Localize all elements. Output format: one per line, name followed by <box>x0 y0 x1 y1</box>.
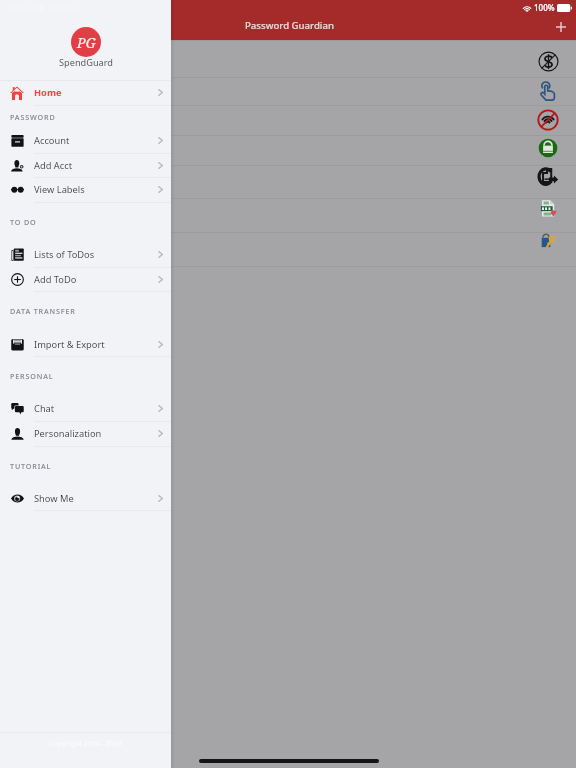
staticText: Personalization <box>34 427 102 440</box>
button[interactable]: Import & Export <box>0 332 171 357</box>
button[interactable]: Add password <box>549 15 572 38</box>
button[interactable]: No charge <box>0 40 576 76</box>
button[interactable]: Show Me <box>0 486 171 511</box>
button[interactable]: Home <box>0 80 171 105</box>
button[interactable]: Tap to view <box>0 77 576 106</box>
button[interactable]: View Labels <box>0 177 171 202</box>
staticText: Add ToDo <box>34 273 77 286</box>
staticText: Lists of ToDos <box>34 248 95 261</box>
button[interactable]: Lists of ToDos <box>0 242 171 267</box>
staticText: PG <box>77 33 96 52</box>
staticText: TO DO <box>10 217 37 227</box>
staticText: DATA TRANSFER <box>10 306 76 316</box>
staticText: TUTORIAL <box>10 461 52 471</box>
button[interactable]: Account <box>0 128 171 153</box>
button[interactable]: Add ToDo <box>0 267 171 292</box>
staticText: PASSWORD <box>10 112 56 122</box>
staticText: Chat <box>34 402 55 415</box>
staticText: PERSONAL <box>10 371 54 381</box>
staticText: Password Guardian <box>245 19 334 32</box>
staticText: View Labels <box>34 183 85 196</box>
staticText: Account <box>34 134 70 147</box>
button[interactable]: Add Acct <box>0 153 171 178</box>
staticText: Add Acct <box>34 159 73 172</box>
button[interactable]: Password key <box>0 232 576 266</box>
button[interactable]: Export CSV <box>0 165 576 199</box>
staticText: Show Me <box>34 492 74 505</box>
button[interactable]: Personalization <box>0 421 171 446</box>
button[interactable]: SpendGuard logo <box>71 27 101 57</box>
staticText: Import & Export <box>34 338 105 351</box>
staticText: 100% <box>534 2 555 13</box>
staticText: Home <box>34 86 62 99</box>
button[interactable]: Secure vault <box>0 135 576 165</box>
button[interactable]: Chat <box>0 396 171 421</box>
button[interactable]: CSV file <box>0 198 576 232</box>
button[interactable]: Offline mode <box>0 105 576 134</box>
staticText: SpendGuard <box>59 56 113 69</box>
